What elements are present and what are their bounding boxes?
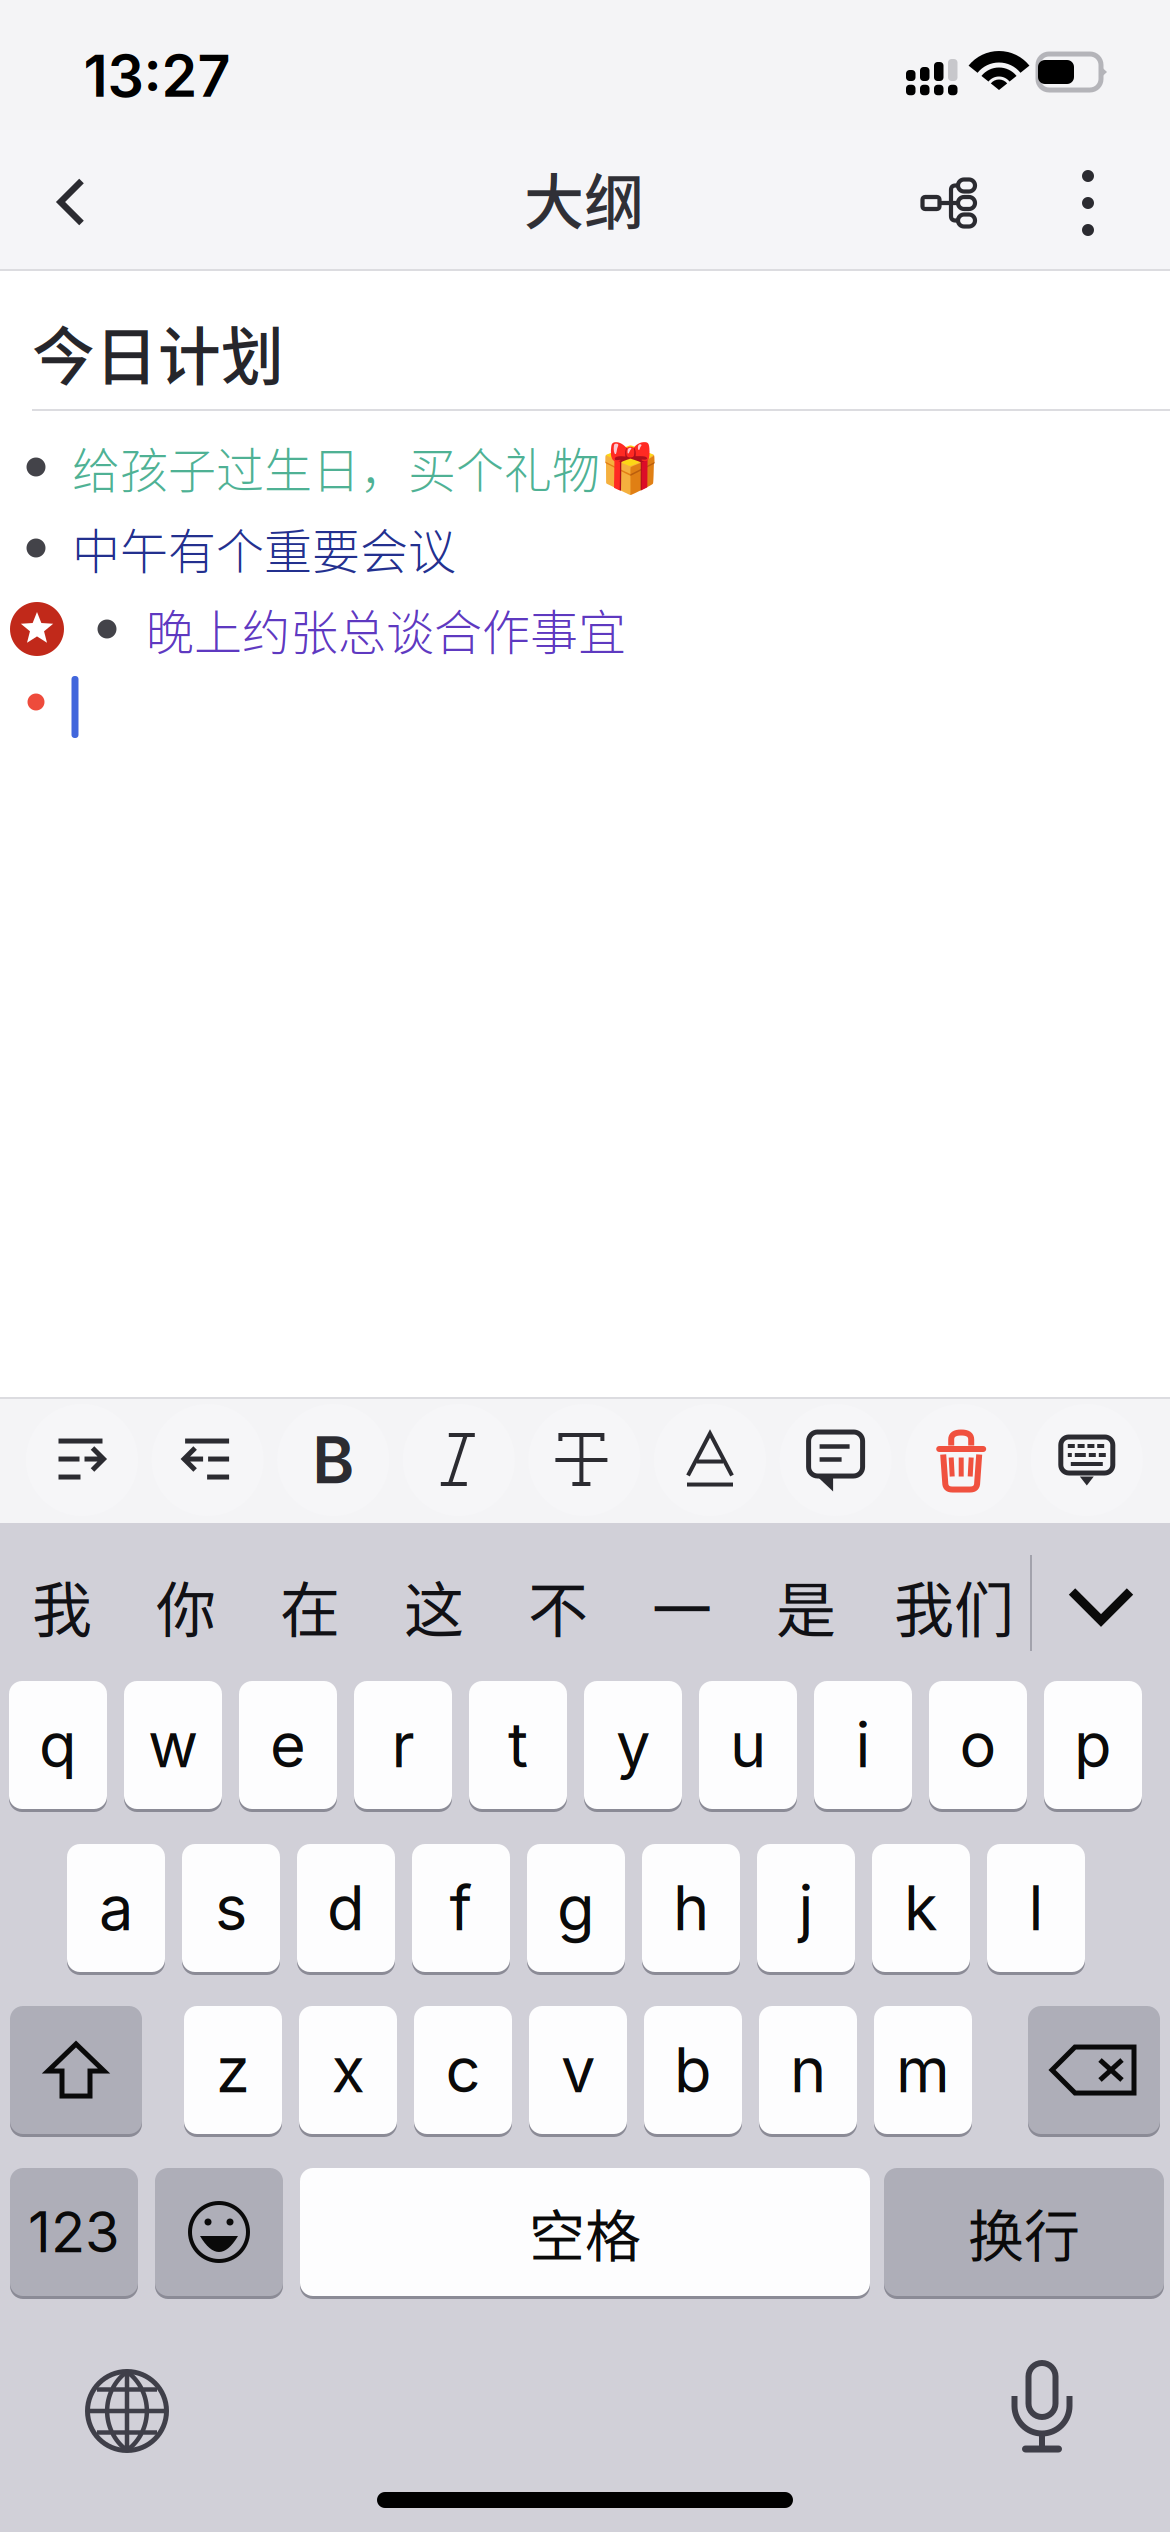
button[interactable]: e: [239, 1678, 337, 1812]
button[interactable]: Underline: [647, 1398, 773, 1522]
button[interactable]: c: [414, 2003, 512, 2137]
button[interactable]: s: [182, 1841, 280, 1975]
button[interactable]: Italic: [396, 1398, 522, 1522]
staticText: o: [959, 1708, 996, 1782]
button[interactable]: 一: [623, 1554, 741, 1658]
button[interactable]: Back: [6, 131, 136, 272]
staticText: 你: [156, 1563, 216, 1649]
staticText: p: [1074, 1708, 1112, 1782]
button[interactable]: h: [642, 1841, 740, 1975]
button[interactable]: Outdent: [145, 1398, 271, 1522]
button[interactable]: v: [529, 2003, 627, 2137]
button[interactable]: 在: [251, 1554, 369, 1658]
staticText: 今日计划: [32, 307, 284, 397]
button[interactable]: Hide keyboard: [1024, 1398, 1150, 1522]
button[interactable]: 我们: [869, 1554, 1039, 1658]
button[interactable]: 是: [747, 1554, 865, 1658]
staticText: e: [270, 1708, 306, 1782]
button[interactable]: w: [124, 1678, 222, 1812]
staticText: 123: [28, 2198, 120, 2266]
button[interactable]: k: [872, 1841, 970, 1975]
button[interactable]: o: [929, 1678, 1027, 1812]
staticText: f: [449, 1871, 472, 1945]
staticText: 空格: [529, 2191, 641, 2273]
button[interactable]: Bold: [270, 1398, 396, 1522]
staticText: c: [445, 2033, 480, 2107]
button[interactable]: Comment: [773, 1398, 899, 1522]
staticText: 换行: [968, 2191, 1080, 2273]
button[interactable]: Strikethrough: [521, 1398, 647, 1522]
button[interactable]: More: [1033, 132, 1143, 273]
button[interactable]: 我: [3, 1554, 121, 1658]
button[interactable]: 这: [375, 1554, 493, 1658]
staticText: x: [331, 2033, 364, 2107]
staticText: 中午有个重要会议: [72, 513, 456, 583]
staticText: 是: [776, 1563, 836, 1649]
staticText: 一: [652, 1563, 712, 1649]
button[interactable]: b: [644, 2003, 742, 2137]
button[interactable]: l: [987, 1841, 1085, 1975]
button[interactable]: Switch keyboard: [32, 2346, 222, 2476]
button[interactable]: Collapse candidates: [1036, 1554, 1166, 1658]
button[interactable]: r: [354, 1678, 452, 1812]
staticText: t: [508, 1708, 528, 1782]
button[interactable]: d: [297, 1841, 395, 1975]
staticText: 在: [280, 1563, 340, 1649]
button[interactable]: j: [757, 1841, 855, 1975]
button[interactable]: Indent right: [19, 1398, 145, 1522]
staticText: i: [855, 1708, 870, 1782]
button[interactable]: Mind map: [891, 132, 1011, 273]
staticText: 给孩子过生日，买个礼物🎁: [72, 432, 660, 502]
button[interactable]: Dictate: [947, 2341, 1137, 2471]
button[interactable]: i: [814, 1678, 912, 1812]
button[interactable]: z: [184, 2003, 282, 2137]
button[interactable]: 空格: [300, 2165, 870, 2299]
button[interactable]: q: [9, 1678, 107, 1812]
staticText: b: [674, 2033, 712, 2107]
staticText: u: [730, 1708, 766, 1782]
button[interactable]: n: [759, 2003, 857, 2137]
staticText: 晚上约张总谈合作事宜: [146, 594, 626, 664]
button[interactable]: 不: [499, 1554, 617, 1658]
staticText: a: [99, 1871, 133, 1945]
button[interactable]: p: [1044, 1678, 1142, 1812]
button[interactable]: 你: [127, 1554, 245, 1658]
button[interactable]: 换行: [884, 2165, 1164, 2299]
button[interactable]: m: [874, 2003, 972, 2137]
button[interactable]: g: [527, 1841, 625, 1975]
staticText: s: [215, 1871, 247, 1945]
staticText: y: [616, 1708, 650, 1782]
button[interactable]: t: [469, 1678, 567, 1812]
button[interactable]: Delete: [898, 1398, 1024, 1522]
staticText: 这: [404, 1563, 464, 1649]
staticText: l: [1028, 1871, 1043, 1945]
staticText: j: [798, 1871, 813, 1945]
button[interactable]: 123: [10, 2165, 138, 2299]
staticText: B: [312, 1421, 354, 1499]
button[interactable]: y: [584, 1678, 682, 1812]
button[interactable]: f: [412, 1841, 510, 1975]
staticText: g: [557, 1871, 595, 1945]
staticText: 13:27: [83, 41, 230, 111]
staticText: d: [327, 1871, 365, 1945]
staticText: k: [904, 1871, 938, 1945]
button[interactable]: x: [299, 2003, 397, 2137]
button[interactable]: u: [699, 1678, 797, 1812]
staticText: 大纲: [524, 155, 644, 241]
button[interactable]: Emoji: [155, 2165, 283, 2299]
staticText: z: [216, 2033, 250, 2107]
button[interactable]: Delete: [1028, 2003, 1160, 2137]
staticText: 我们: [894, 1563, 1014, 1649]
staticText: q: [39, 1708, 77, 1782]
staticText: v: [561, 2033, 595, 2107]
staticText: m: [896, 2033, 950, 2107]
staticText: 不: [528, 1563, 588, 1649]
staticText: h: [673, 1871, 709, 1945]
button[interactable]: a: [67, 1841, 165, 1975]
staticText: r: [391, 1708, 414, 1782]
staticText: n: [790, 2033, 826, 2107]
staticText: 我: [32, 1563, 92, 1649]
staticText: w: [148, 1708, 198, 1782]
button[interactable]: Shift: [10, 2003, 142, 2137]
